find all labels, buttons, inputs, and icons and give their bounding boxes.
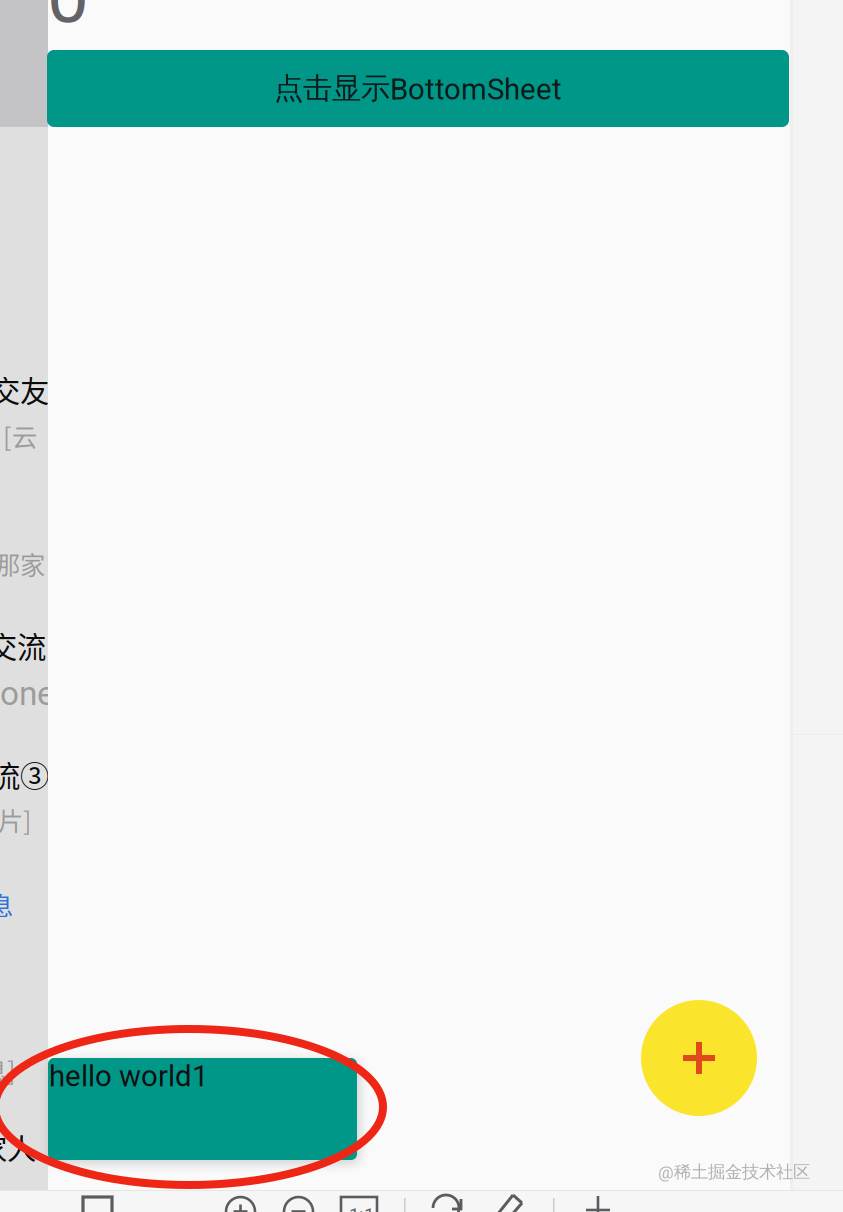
staticText: 点击显示BottomSheet bbox=[274, 70, 562, 107]
staticText: lone bbox=[0, 674, 55, 713]
button[interactable]: Zoom in bbox=[226, 1197, 255, 1212]
staticText: 息] bbox=[0, 1051, 16, 1088]
staticText: 1:1 bbox=[349, 1204, 374, 1212]
staticText: 交友 bbox=[0, 368, 49, 410]
staticText: 片] bbox=[0, 801, 32, 838]
staticText: 息 bbox=[0, 886, 13, 923]
staticText: 交流 bbox=[0, 624, 46, 666]
button[interactable]: Draw bbox=[493, 1190, 527, 1212]
staticText: ：[云 bbox=[0, 417, 37, 454]
button[interactable]: Add bbox=[641, 1000, 757, 1116]
button[interactable]: Refresh bbox=[432, 1182, 466, 1212]
button[interactable]: Select bbox=[83, 1197, 112, 1212]
button[interactable]: Actual size bbox=[341, 1197, 377, 1212]
button[interactable]: 点击显示BottomSheet bbox=[47, 50, 789, 127]
staticText: 0 bbox=[47, 0, 89, 40]
button[interactable]: Zoom out bbox=[284, 1197, 313, 1212]
staticText: @稀土掘金技术社区 bbox=[658, 1161, 810, 1183]
staticText: 流③ bbox=[0, 753, 49, 795]
button[interactable]: Align bbox=[583, 1194, 613, 1212]
staticText: 那家 bbox=[0, 545, 45, 582]
staticText: 家人 bbox=[0, 1126, 36, 1168]
staticText: hello world1 bbox=[49, 1059, 208, 1093]
